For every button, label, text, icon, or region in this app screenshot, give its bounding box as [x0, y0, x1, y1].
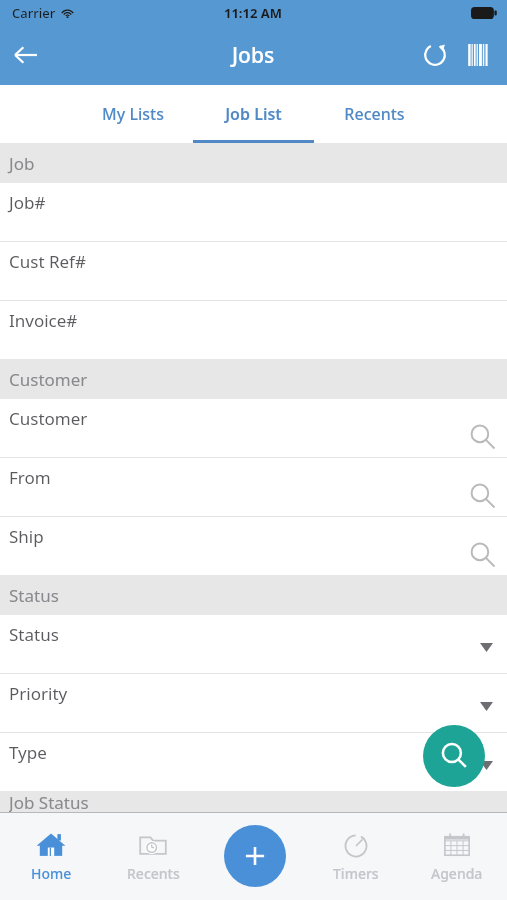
button[interactable]: Recents: [102, 812, 204, 900]
button[interactable]: Cust Ref#: [0, 242, 507, 300]
staticText: Cust Ref#: [9, 250, 86, 273]
button[interactable]: From: [0, 458, 507, 516]
staticText: Recents: [127, 864, 180, 883]
staticText: Customer: [9, 368, 88, 391]
button[interactable]: Search: [423, 725, 485, 787]
staticText: Timers: [333, 864, 379, 883]
staticText: Customer: [9, 407, 88, 430]
staticText: Ship: [9, 525, 44, 548]
staticText: My Lists: [102, 103, 164, 125]
button[interactable]: Type: [0, 733, 507, 791]
button[interactable]: Back: [0, 29, 52, 81]
staticText: Job Status: [9, 791, 89, 812]
button[interactable]: Agenda: [406, 812, 507, 900]
staticText: Job List: [225, 103, 282, 125]
staticText: Invoice#: [9, 309, 78, 332]
button[interactable]: Job List: [193, 85, 314, 143]
staticText: Status: [9, 623, 59, 646]
button[interactable]: Refresh: [413, 33, 457, 77]
staticText: Job: [9, 152, 35, 175]
button[interactable]: Invoice#: [0, 301, 507, 359]
button[interactable]: My Lists: [72, 85, 193, 143]
button[interactable]: Timers: [305, 812, 406, 900]
staticText: Jobs: [232, 41, 275, 70]
staticText: 11:12 AM: [224, 4, 283, 22]
staticText: From: [9, 466, 51, 489]
staticText: Agenda: [431, 864, 483, 883]
staticText: Home: [31, 864, 72, 883]
button[interactable]: Add: [224, 825, 286, 887]
button[interactable]: Job#: [0, 183, 507, 241]
button[interactable]: Priority: [0, 674, 507, 732]
staticText: Priority: [9, 682, 68, 705]
button[interactable]: Home: [0, 812, 102, 900]
button[interactable]: Recents: [314, 85, 435, 143]
button[interactable]: Customer: [0, 399, 507, 457]
staticText: Carrier: [12, 4, 56, 22]
staticText: Job#: [9, 191, 46, 214]
staticText: Status: [9, 584, 59, 607]
button[interactable]: Scan barcode: [457, 33, 501, 77]
staticText: Recents: [344, 103, 405, 125]
staticText: Type: [9, 741, 47, 764]
button[interactable]: Status: [0, 615, 507, 673]
button[interactable]: Ship: [0, 517, 507, 575]
